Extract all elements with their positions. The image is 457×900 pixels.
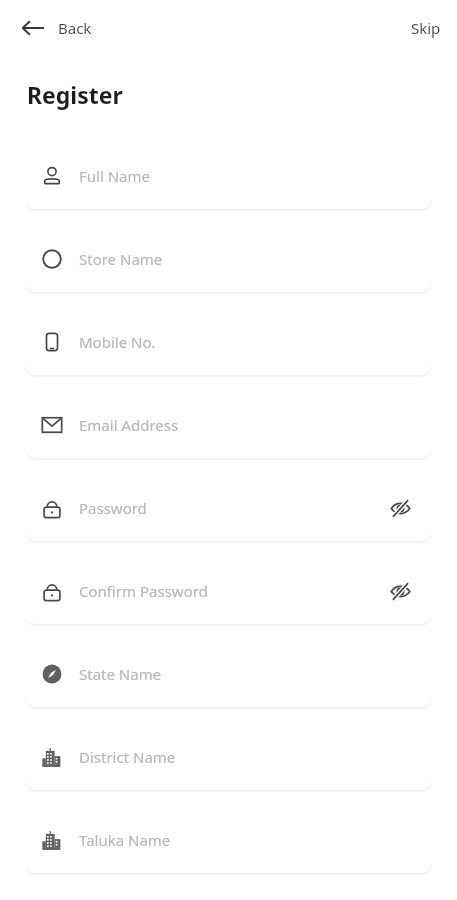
staticText: District Name	[79, 747, 416, 767]
button[interactable]: Email Address	[25, 391, 432, 458]
button[interactable]: Full Name	[25, 142, 432, 209]
staticText: Confirm Password	[79, 581, 384, 601]
staticText: Email Address	[79, 415, 416, 435]
staticText: Store Name	[79, 249, 416, 269]
staticText: Register	[27, 79, 123, 110]
button[interactable]: Taluka Name	[25, 806, 432, 873]
staticText: Back	[58, 18, 92, 38]
staticText: State Name	[79, 664, 416, 684]
button[interactable]: Store Name	[25, 225, 432, 292]
staticText: Taluka Name	[79, 830, 416, 850]
button[interactable]: State Name	[25, 640, 432, 707]
staticText: Mobile No.	[79, 332, 416, 352]
button[interactable]: District Name	[25, 723, 432, 790]
button[interactable]: Skip	[403, 12, 449, 44]
button[interactable]: Back	[14, 9, 98, 47]
button[interactable]: Password	[25, 474, 432, 541]
button[interactable]: Mobile No.	[25, 308, 432, 375]
button[interactable]: Show password	[384, 492, 416, 524]
staticText: Full Name	[79, 166, 416, 186]
button[interactable]: Show password	[384, 575, 416, 607]
staticText: Skip	[411, 18, 441, 38]
button[interactable]: Confirm Password	[25, 557, 432, 624]
staticText: Password	[79, 498, 384, 518]
